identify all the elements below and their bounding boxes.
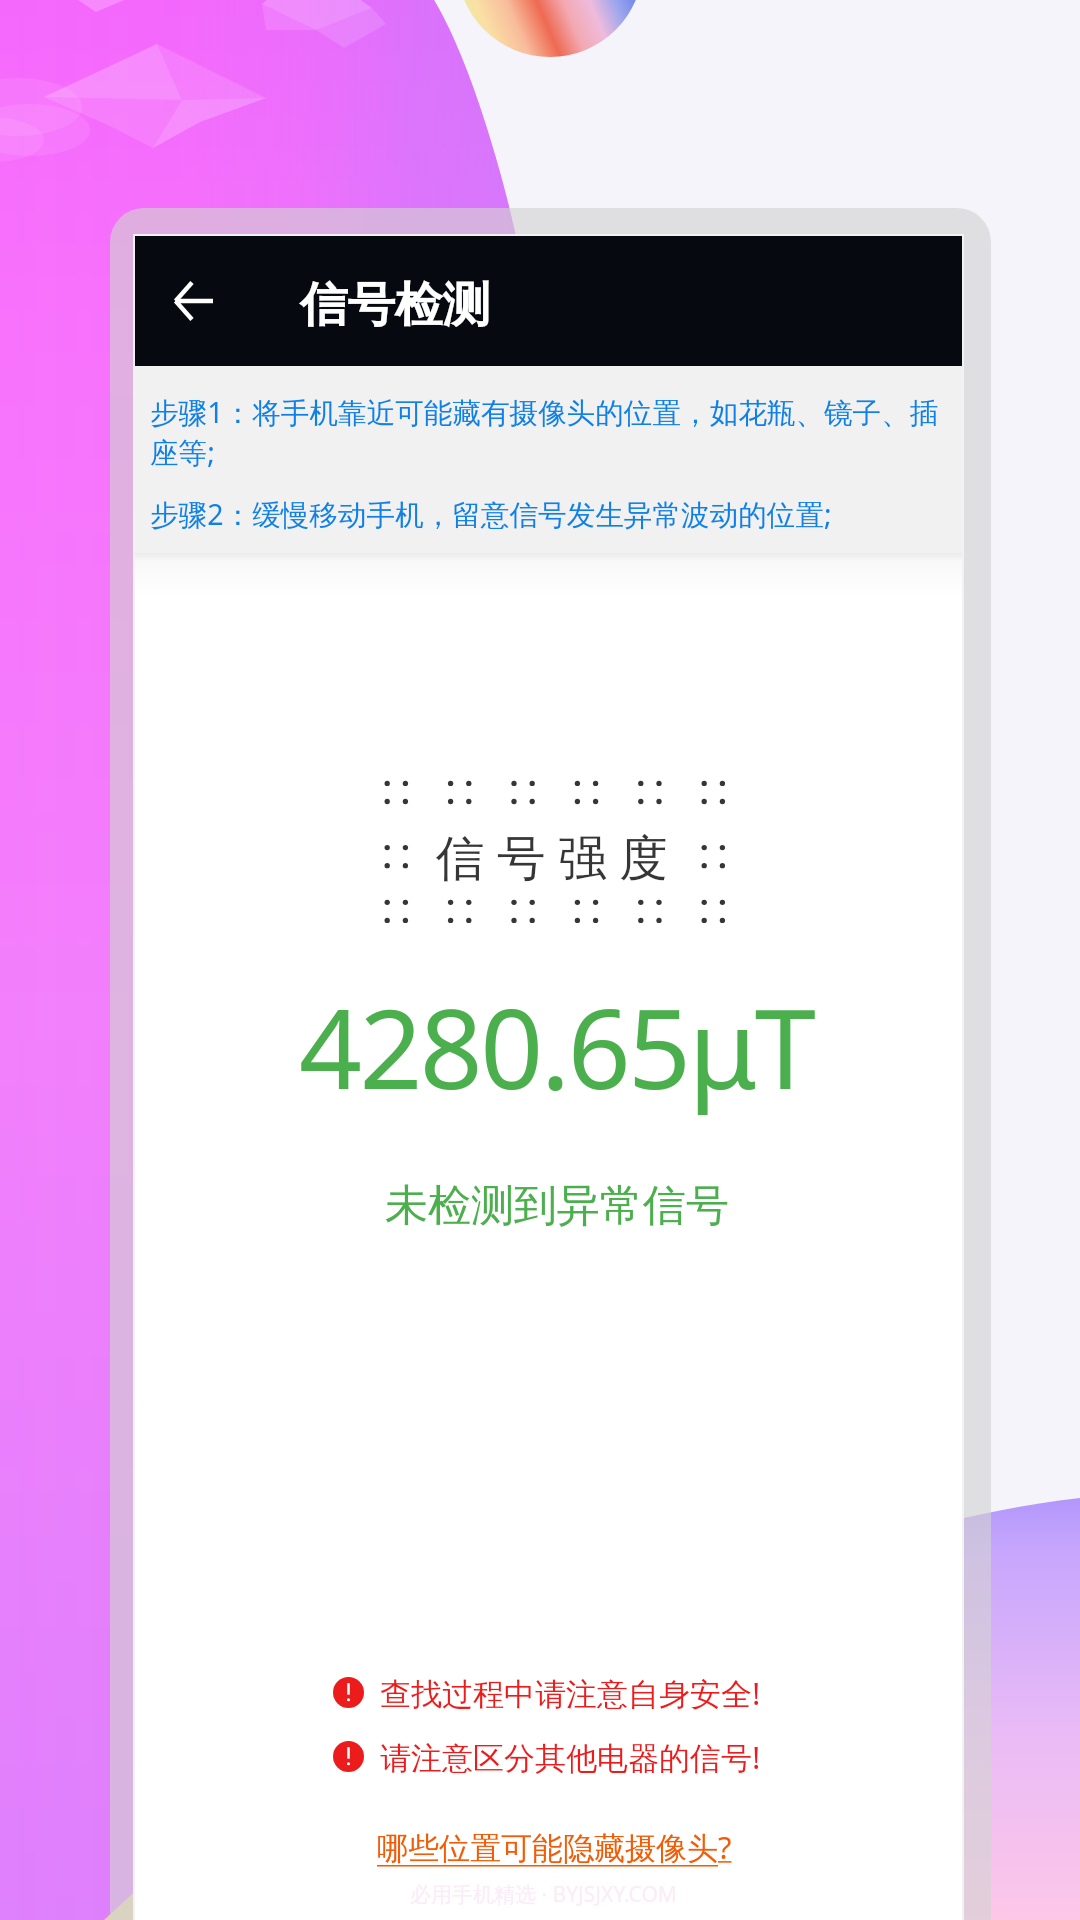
staticText: 查找过程中请注意自身安全! [380,1672,761,1714]
staticText: 4280.65μT [299,971,814,1121]
button[interactable]: 哪些位置可能隐藏摄像头? [369,1818,740,1876]
staticText: 信号检测 [300,275,490,335]
staticText: 未检测到异常信号 [385,1179,729,1233]
staticText: 必用手机精选 · BYJSJXY.COM [410,1880,677,1909]
staticText: 步骤1：将手机靠近可能藏有摄像头的位置，如花瓶、镜子、插座等; [150,392,950,471]
staticText: 步骤2：缓慢移动手机，留意信号发生异常波动的位置; [150,494,950,533]
staticText: 请注意区分其他电器的信号! [380,1736,761,1778]
staticText: 哪些位置可能隐藏摄像头? [377,1826,732,1868]
button[interactable]: Back [138,255,248,347]
staticText: 信 号 强 度 [436,823,668,889]
